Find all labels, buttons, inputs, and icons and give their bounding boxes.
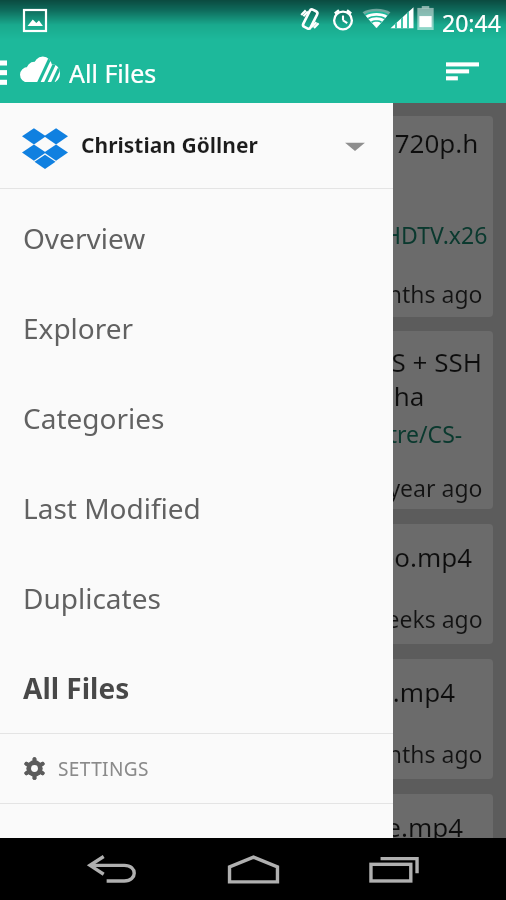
staticText: SETTINGS (58, 756, 149, 782)
button[interactable]: SETTINGS (0, 734, 393, 803)
button[interactable]: Recording-20170512-182-video.mp4 (13, 524, 493, 644)
button[interactable]: Holiday-20160824-1315-movie.mp4 (13, 794, 493, 900)
staticText: About 3 months ago (262, 278, 483, 309)
staticText: Explorer (23, 309, 134, 347)
staticText: Recording-20170512-182-video.mp4 (31, 539, 473, 574)
staticText: All Files (69, 56, 157, 90)
staticText: Overview (23, 219, 146, 257)
staticText: About 1 year ago (298, 472, 483, 503)
staticText: 20:44 (442, 7, 501, 38)
staticText: A.Great.Movie.Title.2014.BRip.720p.h 264… (31, 125, 479, 195)
button[interactable]: All Files (0, 643, 393, 733)
button[interactable]: Screencast-20170103-090-clip.mp4 (13, 659, 493, 779)
button[interactable]: Christian Göllner (0, 103, 393, 188)
button[interactable]: Back (78, 846, 148, 892)
button[interactable]: Last Modified (0, 463, 393, 553)
staticText: Categories (23, 399, 165, 437)
button[interactable]: Categories (0, 373, 393, 463)
button[interactable]: Overview (0, 193, 393, 283)
button[interactable]: Recent apps (359, 846, 429, 892)
staticText: All Files (23, 669, 130, 707)
staticText: Holiday-20160824-1315-movie.mp4 (31, 809, 464, 844)
staticText: Christian Göllner (81, 131, 258, 160)
button[interactable]: Explorer (0, 283, 393, 373)
button[interactable]: Open navigation drawer (0, 53, 7, 89)
button[interactable]: Sort (434, 48, 490, 94)
staticText: /storage/emulated/0/Docs/terrestre/CS- (31, 418, 463, 449)
button[interactable]: Home (218, 846, 288, 892)
staticText: Duplicates (23, 579, 161, 617)
button[interactable]: A.Great.Movie.Title.2014.BRip.720p.h 264… (13, 116, 493, 317)
staticText: /sdcard/Vid/x264-GROUP.BluRay.HDTV.x26 (31, 219, 488, 250)
staticText: Ubuntu Server setup 14.04 LTS + SSH back… (31, 344, 482, 414)
button[interactable]: Ubuntu Server setup 14.04 LTS + SSH back… (13, 331, 493, 509)
staticText: About 5 months ago (262, 738, 483, 769)
button[interactable]: Duplicates (0, 553, 393, 643)
staticText: About 9 months ago (262, 873, 483, 900)
staticText: Last Modified (23, 489, 201, 527)
staticText: Screencast-20170103-090-clip.mp4 (31, 674, 456, 709)
staticText: About 2 weeks ago (278, 603, 483, 634)
